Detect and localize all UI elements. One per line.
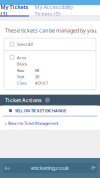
staticText: Return to Ticket Management bbox=[8, 120, 58, 126]
staticText: Block bbox=[17, 61, 27, 67]
staticText: My Accessibility Tickets (0) bbox=[34, 3, 73, 18]
staticText: Aa bbox=[4, 165, 9, 171]
staticText: 28 bbox=[35, 74, 39, 79]
staticText: SELL ON TICKET EXCHANGE bbox=[15, 108, 66, 113]
staticText: eticketing.co.uk bbox=[31, 164, 69, 172]
staticText: K8 bbox=[35, 68, 39, 73]
staticText: Area bbox=[17, 55, 26, 60]
staticText: ADULT bbox=[35, 80, 48, 86]
staticText: Seat bbox=[17, 74, 24, 79]
button[interactable]: Address bar bbox=[3, 163, 97, 173]
button[interactable]: ‹ bbox=[0, 117, 100, 130]
staticText: Row bbox=[17, 68, 24, 73]
staticText: These tickets can be managed by you. bbox=[5, 27, 97, 34]
button[interactable]: My Tickets (1) bbox=[0, 5, 29, 15]
staticText: Select All bbox=[17, 41, 33, 47]
staticText: Ticket Actions bbox=[5, 97, 42, 104]
staticText: ‹ bbox=[5, 120, 7, 127]
button[interactable]: Ticket Actions bbox=[0, 95, 100, 106]
button[interactable]: SELL ON TICKET EXCHANGE bbox=[3, 106, 97, 116]
staticText: ⟳ bbox=[91, 165, 95, 171]
staticText: Class bbox=[17, 80, 27, 86]
button[interactable]: My Accessibility Tickets (0) bbox=[29, 5, 79, 15]
staticText: My Tickets (1) bbox=[0, 3, 28, 18]
